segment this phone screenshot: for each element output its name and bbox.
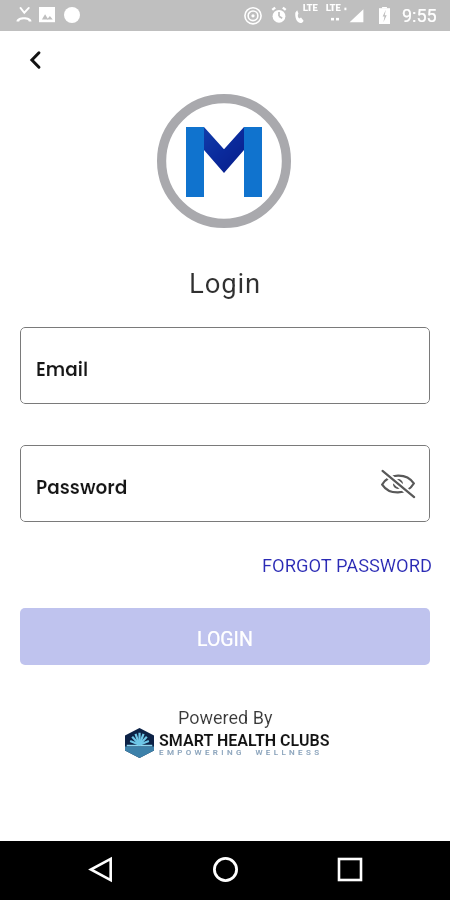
staticText: 9:55	[402, 5, 437, 26]
button[interactable]: Home	[203, 847, 247, 891]
staticText: Powered By	[178, 707, 273, 728]
button[interactable]: Back	[17, 42, 53, 78]
button[interactable]: Password	[20, 445, 430, 522]
staticText: SMART HEALTH CLUBS	[159, 731, 330, 750]
staticText: LTE	[303, 3, 318, 14]
staticText: Login	[189, 267, 261, 299]
staticText: FORGOT PASSWORD	[262, 555, 432, 576]
button[interactable]: Recent apps	[328, 847, 372, 891]
staticText: EMPOWERING WELLNESS	[159, 748, 323, 757]
button[interactable]: FORGOT PASSWORD	[254, 549, 440, 581]
button[interactable]: Email	[20, 327, 430, 404]
button[interactable]: Back	[79, 847, 123, 891]
button[interactable]: Show password	[380, 466, 416, 502]
staticText: Password	[36, 475, 128, 501]
staticText: LTE	[326, 3, 341, 14]
button[interactable]: LOGIN	[20, 608, 430, 665]
staticText: LOGIN	[197, 628, 253, 651]
staticText: Email	[36, 357, 89, 383]
